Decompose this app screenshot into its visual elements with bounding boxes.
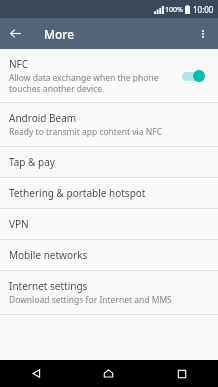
button[interactable]: NFC xyxy=(0,49,218,102)
staticText: Tap & pay xyxy=(9,155,55,169)
staticText: Android Beam xyxy=(9,111,77,125)
staticText: Ready to transmit app content via NFC xyxy=(9,126,163,138)
button[interactable]: Tethering & portable hotspot xyxy=(0,178,218,208)
staticText: Allow data exchange when the phone touch… xyxy=(9,72,159,94)
staticText: 100% xyxy=(165,5,183,15)
staticText: Tethering & portable hotspot xyxy=(9,186,146,200)
staticText: NFC xyxy=(9,57,29,71)
button[interactable]: Back xyxy=(0,360,72,387)
button[interactable]: Mobile networks xyxy=(0,240,218,270)
staticText: More xyxy=(44,26,75,42)
button[interactable]: Tap & pay xyxy=(0,147,218,177)
staticText: Download settings for Internet and MMS xyxy=(9,294,172,306)
staticText: Internet settings xyxy=(9,279,88,293)
button[interactable]: Recent apps xyxy=(145,360,218,387)
staticText: Mobile networks xyxy=(9,248,88,262)
staticText: VPN xyxy=(9,217,29,231)
button[interactable]: Android Beam xyxy=(0,103,218,146)
button[interactable]: VPN xyxy=(0,209,218,239)
button[interactable]: More options xyxy=(187,18,218,49)
button[interactable]: Internet settings xyxy=(0,271,218,314)
button[interactable]: NFC toggle xyxy=(180,68,210,84)
staticText: 10:00 xyxy=(193,4,214,15)
button[interactable]: Back xyxy=(0,18,31,49)
button[interactable]: Home xyxy=(72,360,145,387)
